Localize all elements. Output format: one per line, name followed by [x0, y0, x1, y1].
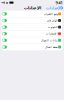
staticText: 9:41: [55, 0, 62, 5]
button[interactable]: الإشعارات: [2, 30, 62, 37]
button[interactable]: البلوتوث: [2, 24, 62, 30]
button[interactable]: بيانات الجوال: [2, 37, 62, 44]
staticText: البلوتوث: [47, 26, 57, 29]
staticText: بيانات الجوال: [40, 39, 57, 42]
button[interactable]: نقطة اتصال: [2, 44, 62, 50]
staticText: وضع الطيران: [43, 12, 57, 15]
button[interactable]: وضع الطيران: [2, 11, 62, 17]
staticText: نقطة اتصال: [44, 45, 57, 48]
staticText: الإعدادات: [45, 6, 60, 10]
staticText: الإعدادات: [23, 6, 40, 10]
staticText: الإشعارات: [45, 32, 57, 35]
button[interactable]: الإعدادات: [45, 5, 63, 11]
button[interactable]: الواي فاي: [2, 17, 62, 24]
staticText: الواي فاي: [46, 19, 57, 22]
